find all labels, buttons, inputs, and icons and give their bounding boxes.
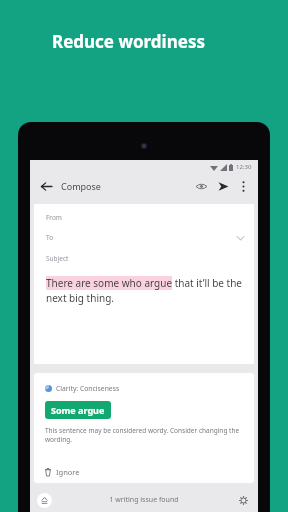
staticText: This sentence may be considered wordy. C… <box>45 426 244 444</box>
staticText: Some argue <box>51 404 105 416</box>
staticText: Subject <box>46 254 69 263</box>
staticText: Reduce wordiness <box>52 30 205 53</box>
staticText: There are some who argue that it’ll be t… <box>46 276 244 305</box>
staticText: 12:30 <box>236 163 252 171</box>
button[interactable]: Attach <box>193 178 210 195</box>
staticText: From <box>46 213 62 222</box>
staticText: To <box>46 233 54 242</box>
button[interactable]: From <box>34 204 254 364</box>
button[interactable]: Assistant <box>37 493 52 508</box>
staticText: 1 writing issue found <box>109 495 179 505</box>
button[interactable]: More options <box>235 178 251 194</box>
staticText: Compose <box>61 180 101 192</box>
button[interactable]: Some argue <box>45 401 111 419</box>
staticText: Clarity: Conciseness <box>56 384 120 393</box>
button[interactable]: Ignore <box>45 461 244 483</box>
staticText: Ignore <box>56 467 80 477</box>
button[interactable]: Settings <box>236 493 251 508</box>
button[interactable]: Send <box>215 178 232 195</box>
button[interactable]: Back <box>37 177 55 195</box>
button[interactable]: Clarity: Conciseness <box>34 373 254 483</box>
